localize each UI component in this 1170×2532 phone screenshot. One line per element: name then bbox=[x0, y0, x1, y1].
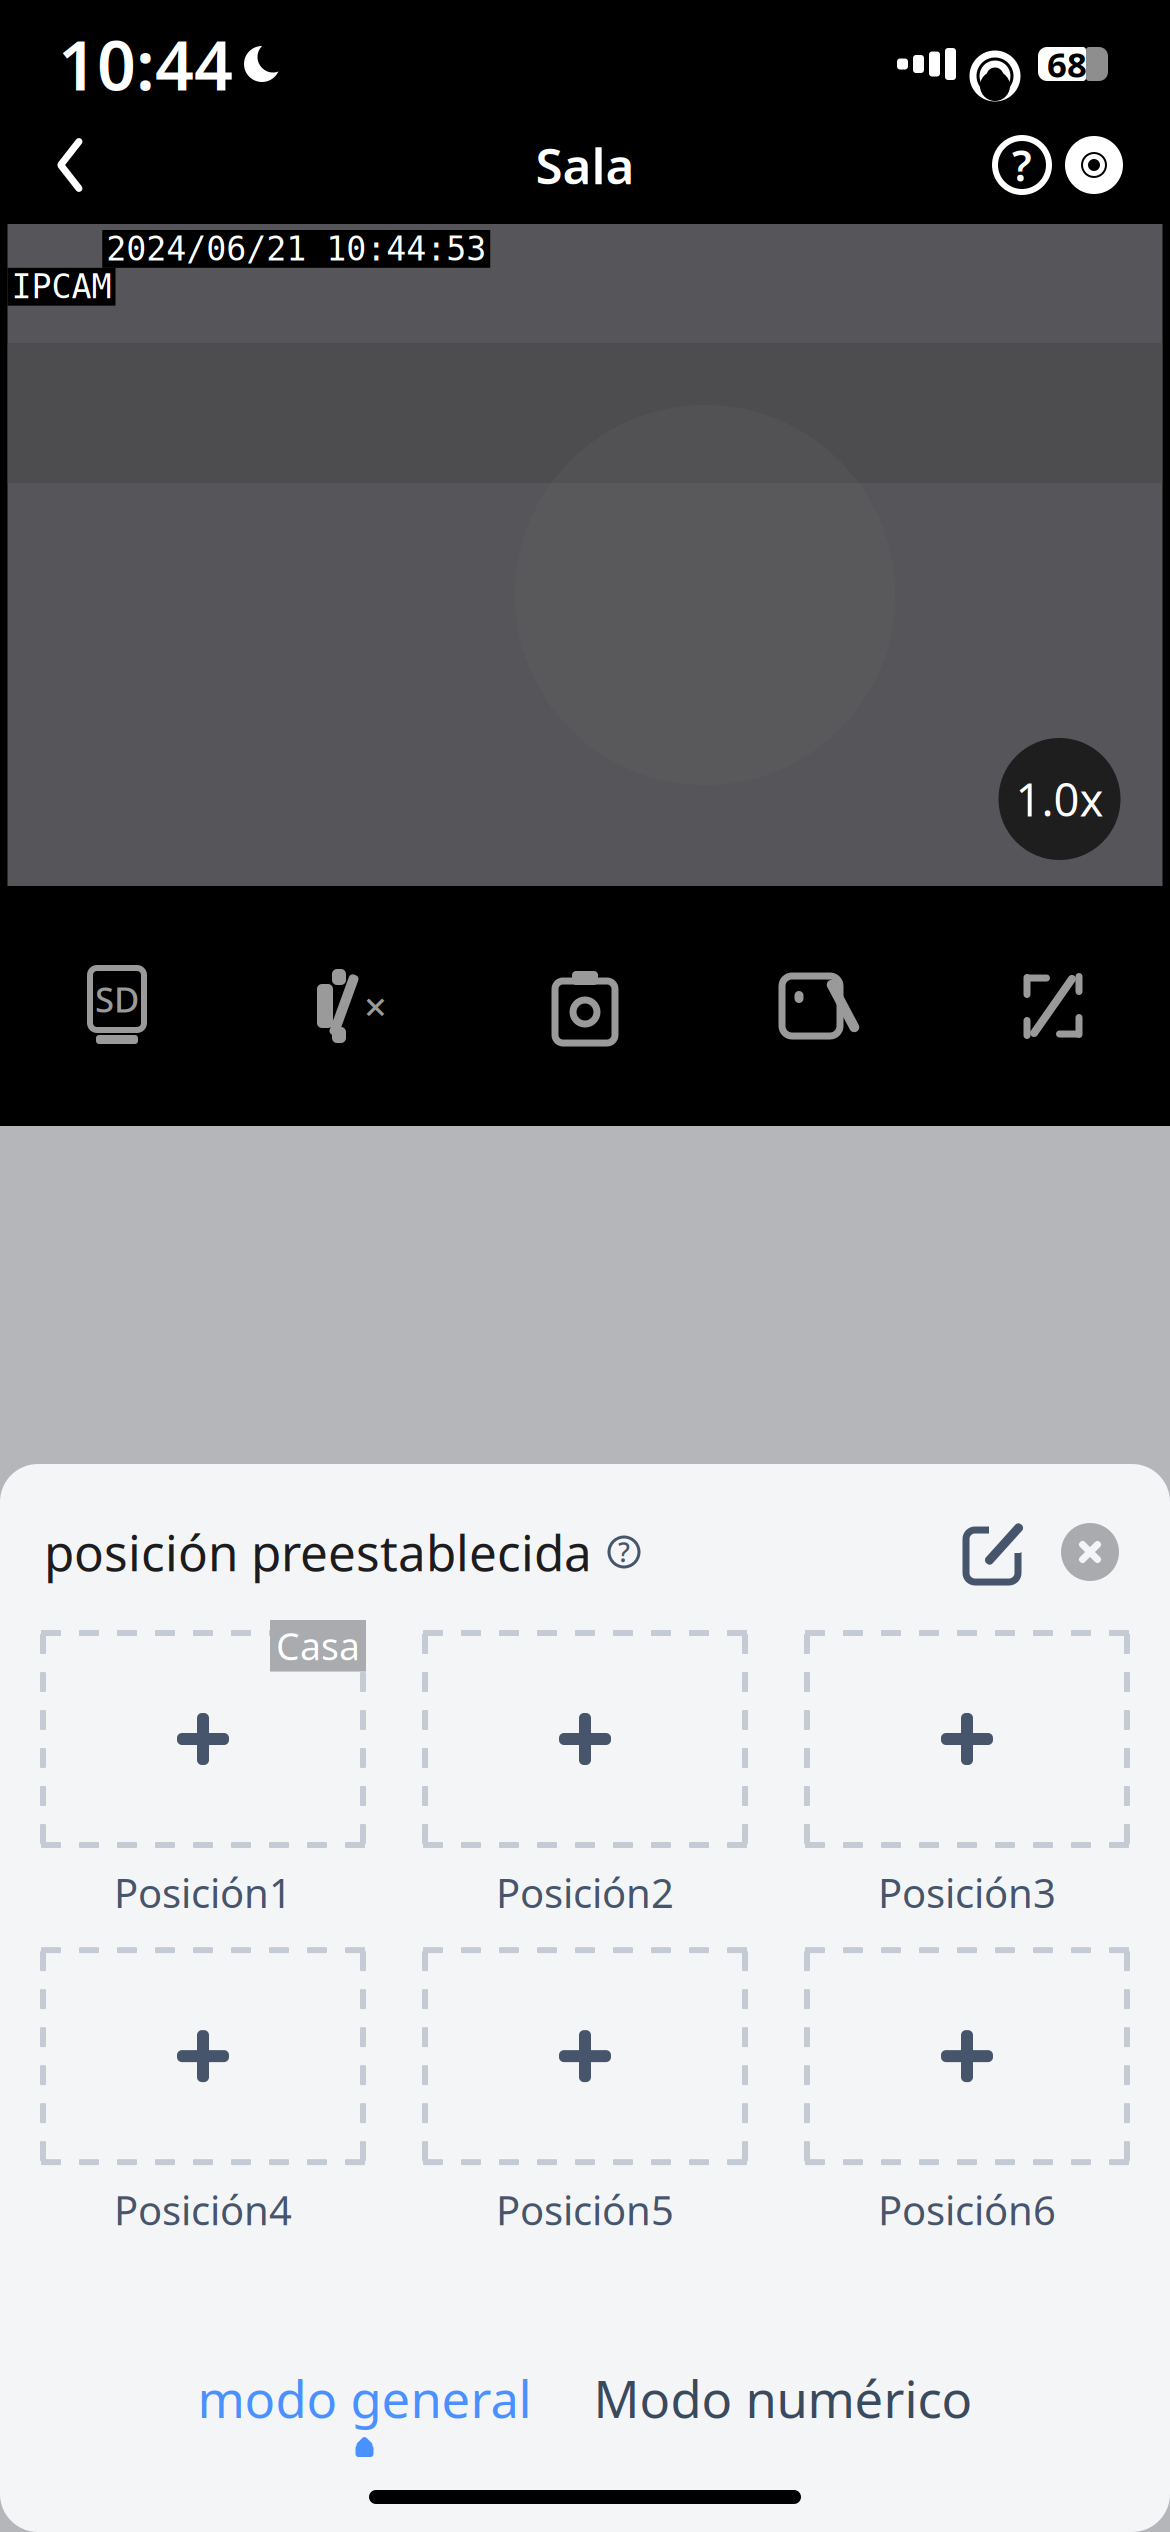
button[interactable]: Modo numérico bbox=[593, 2365, 972, 2456]
staticText: Modo numérico bbox=[593, 2365, 972, 2432]
staticText: Posición2 bbox=[496, 1866, 674, 1919]
button[interactable]: Posición6 bbox=[804, 1947, 1130, 2236]
staticText: IPCAM bbox=[11, 268, 111, 306]
button[interactable]: Stream quality SD bbox=[0, 946, 234, 1066]
staticText: modo general bbox=[197, 2365, 531, 2432]
button[interactable]: 1.0x bbox=[998, 738, 1120, 860]
staticText: Posición6 bbox=[878, 2183, 1056, 2236]
button[interactable]: Edit presets bbox=[958, 1516, 1030, 1588]
staticText: 10:44 bbox=[58, 19, 233, 109]
button[interactable]: Record video bbox=[702, 946, 936, 1066]
staticText: Posición4 bbox=[114, 2183, 292, 2236]
button[interactable]: Posición4 bbox=[40, 1947, 366, 2236]
button[interactable]: Full screen bbox=[936, 946, 1170, 1066]
staticText: ? bbox=[1012, 137, 1032, 193]
button[interactable]: Snapshot bbox=[468, 946, 702, 1066]
button[interactable]: Settings bbox=[1058, 129, 1130, 201]
button[interactable]: About preset positions bbox=[604, 1532, 644, 1572]
staticText: 1.0x bbox=[1015, 769, 1103, 829]
staticText: ? bbox=[618, 1534, 630, 1570]
button[interactable]: Casa bbox=[40, 1630, 366, 1919]
staticText: Sala bbox=[535, 132, 634, 198]
button[interactable]: Back bbox=[40, 129, 100, 201]
staticText: 2024/06/21 10:44:53 bbox=[106, 230, 486, 268]
staticText: Posición5 bbox=[496, 2183, 674, 2236]
button[interactable]: Unmute bbox=[234, 946, 468, 1066]
staticText: SD bbox=[95, 976, 139, 1022]
button[interactable]: Close bbox=[1054, 1516, 1126, 1588]
staticText: Posición3 bbox=[878, 1866, 1056, 1919]
button[interactable]: Posición5 bbox=[422, 1947, 748, 2236]
staticText: Posición1 bbox=[114, 1866, 292, 1919]
staticText: 68 bbox=[1047, 41, 1087, 87]
button[interactable]: modo general bbox=[197, 2365, 531, 2456]
button[interactable]: Posición3 bbox=[804, 1630, 1130, 1919]
staticText: × bbox=[364, 979, 387, 1032]
staticText: posición preestablecida bbox=[44, 1519, 592, 1585]
staticText: Casa bbox=[276, 1621, 360, 1671]
button[interactable]: Help bbox=[986, 129, 1058, 201]
button[interactable]: Posición2 bbox=[422, 1630, 748, 1919]
